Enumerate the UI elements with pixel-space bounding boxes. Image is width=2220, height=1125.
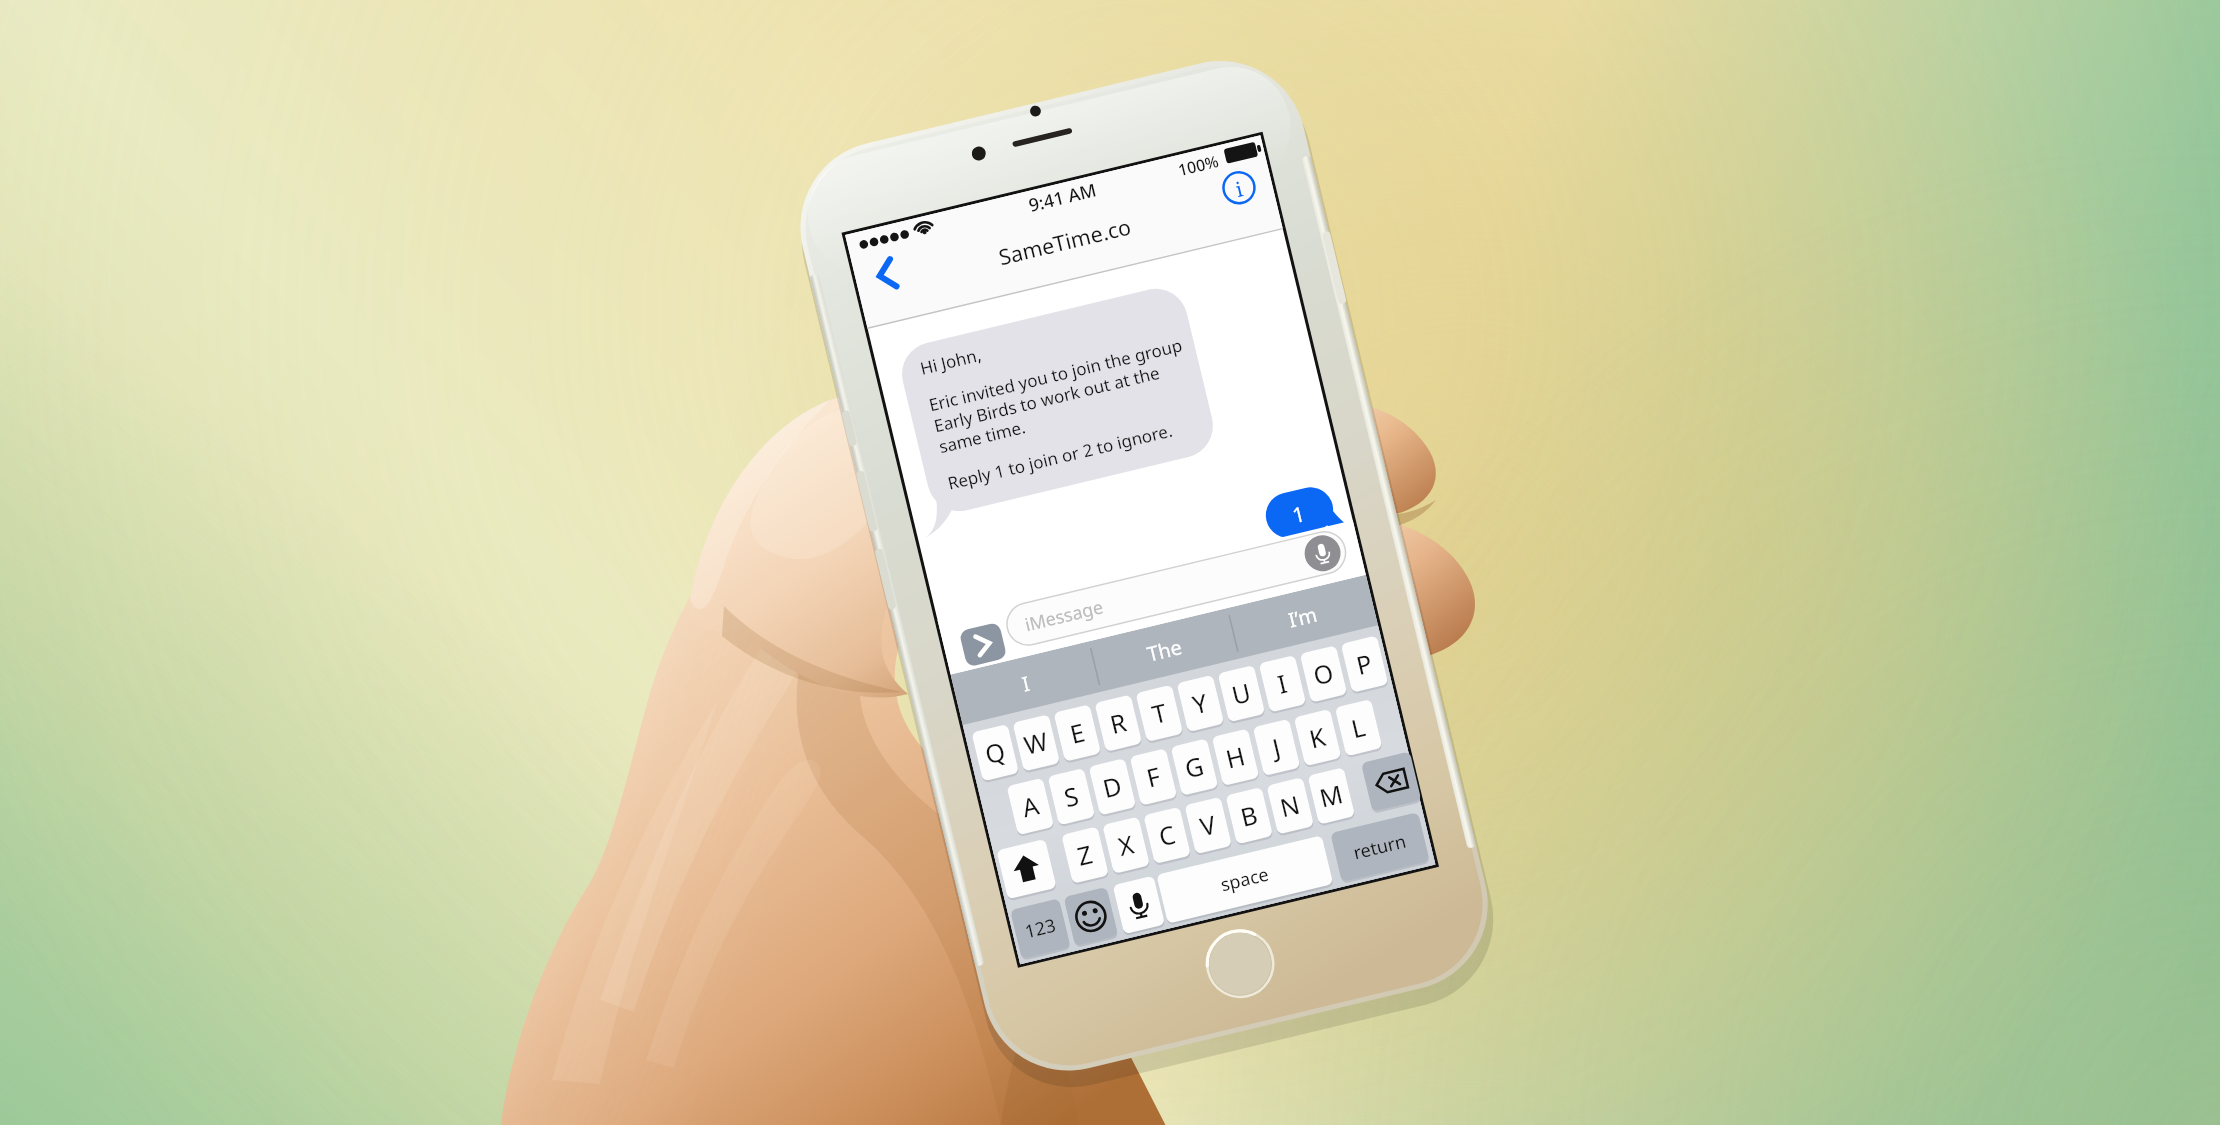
button[interactable]: N <box>1268 776 1312 834</box>
button[interactable]: B <box>1227 786 1271 844</box>
button[interactable]: A <box>1008 777 1052 835</box>
button[interactable]: Numbers and symbols <box>1008 900 1072 958</box>
button[interactable]: Message from SameTime.co: Hi John, Eric … <box>908 305 1208 495</box>
button[interactable]: F <box>1131 747 1175 805</box>
button[interactable]: O <box>1301 644 1345 702</box>
button[interactable]: L <box>1336 698 1380 756</box>
button[interactable]: I <box>1260 654 1304 712</box>
button[interactable]: U <box>1219 664 1263 722</box>
button[interactable]: Delete <box>1359 753 1423 811</box>
button[interactable]: Home <box>1201 937 1277 1013</box>
button[interactable]: W <box>1014 713 1058 771</box>
button[interactable]: SameTime.co iMessage conversation shown … <box>0 0 2220 1125</box>
button[interactable]: D <box>1090 757 1134 815</box>
button[interactable]: P <box>1342 635 1386 693</box>
button[interactable]: H <box>1213 728 1257 786</box>
button[interactable]: Emoji keyboard <box>1063 887 1119 945</box>
button[interactable]: E <box>1055 704 1099 762</box>
button[interactable]: Dictation <box>1112 876 1166 934</box>
button[interactable]: iMessage text field <box>1027 557 1327 619</box>
button[interactable]: V <box>1186 796 1230 854</box>
button[interactable]: G <box>1172 738 1216 796</box>
button[interactable]: Z <box>1063 826 1107 884</box>
button[interactable]: return <box>1330 818 1430 876</box>
button[interactable]: T <box>1137 684 1181 742</box>
button[interactable]: C <box>1145 806 1189 864</box>
button[interactable]: J <box>1254 718 1298 776</box>
button[interactable]: K <box>1295 708 1339 766</box>
button[interactable]: R <box>1096 694 1140 752</box>
button[interactable]: M <box>1309 766 1353 824</box>
button[interactable]: Back <box>848 238 920 310</box>
button[interactable]: Send <box>954 618 1012 672</box>
button[interactable]: space <box>1156 851 1334 909</box>
button[interactable]: Shift <box>995 840 1059 898</box>
button[interactable]: I’m <box>1232 590 1374 644</box>
button[interactable]: Dictate message <box>1296 526 1350 580</box>
button[interactable]: X <box>1104 816 1148 874</box>
button[interactable]: The <box>1093 623 1235 677</box>
button[interactable]: Q <box>973 723 1017 781</box>
button[interactable]: S <box>1049 767 1093 825</box>
button[interactable]: Sent message: 1 <box>1256 483 1344 543</box>
button[interactable]: I <box>955 656 1097 710</box>
button[interactable]: Y <box>1178 674 1222 732</box>
button[interactable]: Conversation details <box>1210 159 1268 217</box>
